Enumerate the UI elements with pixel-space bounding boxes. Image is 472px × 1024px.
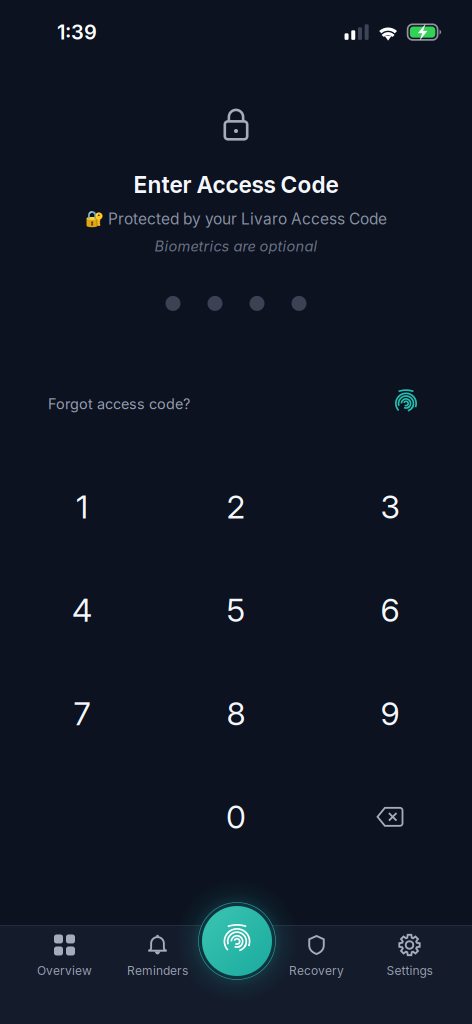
- button[interactable]: 0: [176, 774, 296, 860]
- button[interactable]: 9: [330, 670, 450, 756]
- staticText: 1: [76, 488, 88, 526]
- button[interactable]: 1: [22, 464, 142, 550]
- staticText: 9: [380, 694, 399, 733]
- staticText: 7: [73, 694, 90, 733]
- button[interactable]: Delete: [330, 774, 450, 860]
- button[interactable]: Forgot access code?: [48, 395, 190, 413]
- button[interactable]: 5: [176, 567, 296, 653]
- staticText: Settings: [386, 963, 432, 978]
- button[interactable]: 3: [330, 464, 450, 550]
- button[interactable]: Recovery: [270, 931, 363, 981]
- staticText: 6: [380, 591, 399, 630]
- staticText: 🔐 Protected by your Livaro Access Code: [85, 209, 387, 228]
- staticText: 0: [226, 797, 246, 836]
- button[interactable]: Use biometrics: [388, 386, 424, 422]
- button[interactable]: Scan fingerprint: [157, 861, 317, 1021]
- staticText: Forgot access code?: [48, 395, 190, 413]
- staticText: Enter Access Code: [133, 171, 338, 198]
- button[interactable]: Settings: [363, 931, 456, 981]
- staticText: 4: [72, 591, 92, 630]
- staticText: 3: [380, 488, 399, 526]
- button[interactable]: 6: [330, 567, 450, 653]
- button[interactable]: Overview: [18, 931, 111, 981]
- staticText: Recovery: [289, 963, 344, 978]
- button[interactable]: 7: [22, 670, 142, 756]
- staticText: Biometrics are optional: [154, 237, 317, 255]
- staticText: Overview: [37, 963, 92, 978]
- button[interactable]: 8: [176, 670, 296, 756]
- staticText: 5: [226, 591, 245, 630]
- button[interactable]: 4: [22, 567, 142, 653]
- staticText: 2: [226, 488, 245, 526]
- button[interactable]: Reminders: [111, 931, 204, 981]
- staticText: 8: [226, 694, 245, 733]
- staticText: Reminders: [127, 963, 188, 978]
- button[interactable]: 2: [176, 464, 296, 550]
- staticText: 1:39: [57, 20, 97, 44]
